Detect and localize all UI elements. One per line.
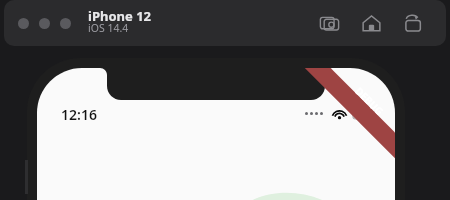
button[interactable] (39, 18, 50, 29)
staticText: iOS 14.4 (88, 21, 129, 35)
button[interactable]: Take screenshot (316, 10, 342, 36)
button[interactable] (18, 18, 29, 29)
button[interactable]: Home (358, 10, 384, 36)
staticText: DEBUG (352, 84, 387, 118)
staticText: 12:16 (61, 105, 97, 124)
button[interactable]: Rotate (400, 10, 426, 36)
staticText: iPhone 12 (88, 7, 151, 25)
button[interactable] (60, 18, 71, 29)
